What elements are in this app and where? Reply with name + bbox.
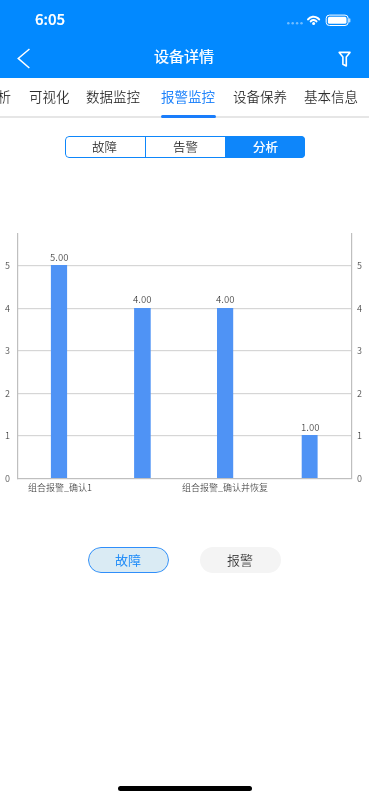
staticText: 报警监控 [161,86,215,106]
staticText: 故障 [115,550,142,569]
staticText: 5 [357,259,362,272]
staticText: 6:05 [35,8,66,30]
staticText: 组合报警_确认1 [28,481,93,494]
staticText: 1 [357,429,362,442]
staticText: 设备保养 [233,86,287,106]
staticText: 2 [5,387,10,400]
staticText: 可视化 [29,86,70,106]
staticText: 数据监控 [86,86,140,106]
staticText: 0 [357,472,362,485]
staticText: 1.00 [301,420,320,433]
button[interactable]: Back [0,34,46,78]
button[interactable]: 数据监控 [78,78,148,116]
button[interactable]: 分析 [0,78,19,116]
button[interactable]: 故障 [65,136,145,158]
button[interactable]: 告警 [146,136,225,158]
staticText: 组合报警_确认并恢复 [182,481,269,494]
button[interactable]: 报警 [200,547,281,573]
button[interactable]: 可视化 [21,78,78,116]
staticText: 4 [357,302,362,315]
staticText: 分析 [0,86,11,106]
staticText: 报警 [227,550,254,569]
staticText: 5.00 [50,250,69,263]
staticText: 0 [5,472,10,485]
staticText: 1 [5,429,10,442]
staticText: 基本信息 [304,86,358,106]
button[interactable]: 基本信息 [296,78,366,116]
staticText: 设备详情 [154,45,215,67]
staticText: 5 [5,259,10,272]
staticText: 故障 [92,137,118,155]
staticText: 分析 [253,137,279,155]
staticText: 3 [357,344,362,357]
button[interactable]: 故障 [88,547,169,573]
staticText: 2 [357,387,362,400]
button[interactable]: 分析 [226,136,305,158]
staticText: 4.00 [216,292,235,305]
button[interactable]: 设备保养 [225,78,295,116]
staticText: 4.00 [133,292,152,305]
staticText: 4 [5,302,10,315]
staticText: 告警 [173,137,199,155]
button[interactable]: 报警监控 [153,78,223,116]
button[interactable]: Filter [323,34,369,78]
staticText: 3 [5,344,10,357]
